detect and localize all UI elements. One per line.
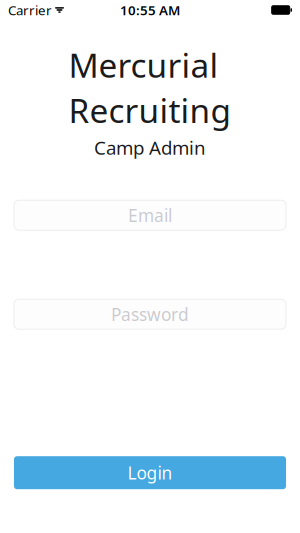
staticText: Mercurial Recruiting — [68, 42, 231, 133]
staticText: Login — [127, 461, 172, 484]
button[interactable]: Email — [14, 200, 286, 230]
staticText: Camp Admin — [94, 135, 206, 160]
staticText: 10:55 AM — [120, 1, 180, 19]
staticText: Carrier — [8, 1, 52, 19]
staticText: Password — [111, 303, 189, 326]
staticText: Email — [128, 204, 172, 227]
button[interactable]: Login — [14, 456, 286, 489]
button[interactable]: Password — [14, 299, 286, 329]
